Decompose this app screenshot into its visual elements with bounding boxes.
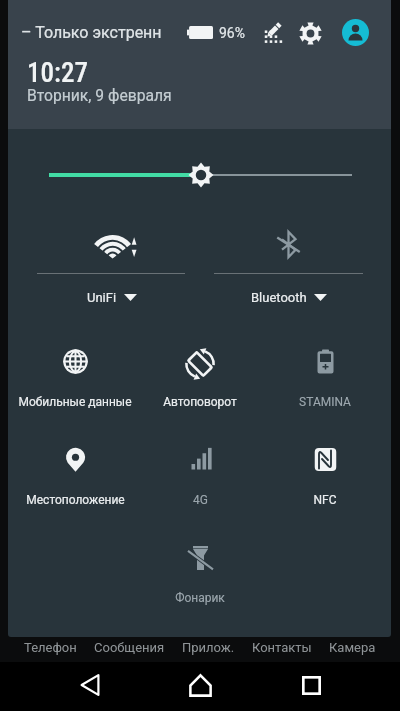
staticText: NFC xyxy=(313,493,337,507)
staticText: UniFi xyxy=(87,290,117,305)
button[interactable]: STAMINA xyxy=(263,336,387,418)
staticText: STAMINA xyxy=(299,395,351,409)
button[interactable]: Прилож. xyxy=(182,640,235,655)
button[interactable]: Фонарик xyxy=(138,532,262,614)
button[interactable]: Мобильные данные xyxy=(13,336,137,418)
staticText: Прилож. xyxy=(182,640,235,655)
button[interactable]: NFC xyxy=(263,434,387,516)
staticText: Камера xyxy=(329,640,376,655)
staticText: Вторник, 9 февраля xyxy=(27,86,172,104)
staticText: – Только экстренн xyxy=(21,23,162,42)
staticText: Автоповорот xyxy=(163,395,237,409)
staticText: Мобильные данные xyxy=(18,395,132,409)
staticText: 10:27 xyxy=(27,57,88,89)
button[interactable]: Телефон xyxy=(24,640,77,655)
button[interactable]: UniFi xyxy=(30,215,193,310)
button[interactable]: Back xyxy=(66,661,114,709)
staticText: Сообщения xyxy=(94,640,165,655)
button[interactable]: Сообщения xyxy=(94,640,165,655)
button[interactable]: Камера xyxy=(329,640,376,655)
button[interactable]: Местоположение xyxy=(13,434,137,516)
staticText: 96% xyxy=(219,25,245,41)
button[interactable]: User profile xyxy=(342,19,369,46)
button[interactable]: Контакты xyxy=(252,640,312,655)
button[interactable]: 4G xyxy=(138,434,262,516)
button[interactable]: Recent apps xyxy=(287,661,335,709)
staticText: Местоположение xyxy=(26,493,125,507)
staticText: Фонарик xyxy=(175,591,225,605)
staticText: Bluetooth xyxy=(251,290,307,305)
button[interactable]: Settings xyxy=(298,21,322,45)
button[interactable]: Bluetooth xyxy=(207,215,370,310)
button[interactable]: Home xyxy=(176,661,224,709)
button[interactable]: Edit quick settings xyxy=(262,22,284,44)
staticText: Телефон xyxy=(24,640,77,655)
button[interactable]: Brightness slider xyxy=(0,150,400,196)
staticText: 4G xyxy=(193,493,208,507)
staticText: Контакты xyxy=(252,640,312,655)
button[interactable]: Автоповорот xyxy=(138,336,262,418)
